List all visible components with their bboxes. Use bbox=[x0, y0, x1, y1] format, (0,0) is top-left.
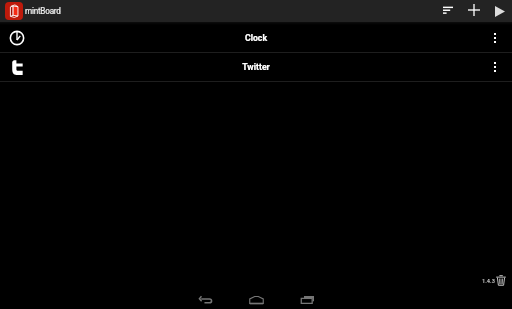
button[interactable]: Clock bbox=[0, 22, 512, 52]
staticText: Clock bbox=[34, 33, 478, 43]
button[interactable]: Back bbox=[180, 291, 231, 309]
button[interactable]: More options bbox=[478, 53, 512, 81]
button[interactable]: Twitter bbox=[0, 53, 512, 81]
staticText: mintBoard bbox=[25, 6, 61, 16]
staticText: 1.4.3 bbox=[482, 278, 495, 285]
button[interactable]: Sort bbox=[435, 0, 461, 22]
button[interactable]: Add bbox=[461, 0, 487, 22]
button[interactable]: Recent apps bbox=[282, 291, 333, 309]
button[interactable]: Delete bbox=[496, 274, 506, 286]
staticText: Twitter bbox=[34, 62, 478, 72]
button[interactable]: mintBoard bbox=[0, 2, 61, 20]
button[interactable]: Home bbox=[231, 291, 282, 309]
button[interactable]: Play bbox=[487, 0, 512, 22]
button[interactable]: More options bbox=[478, 22, 512, 52]
